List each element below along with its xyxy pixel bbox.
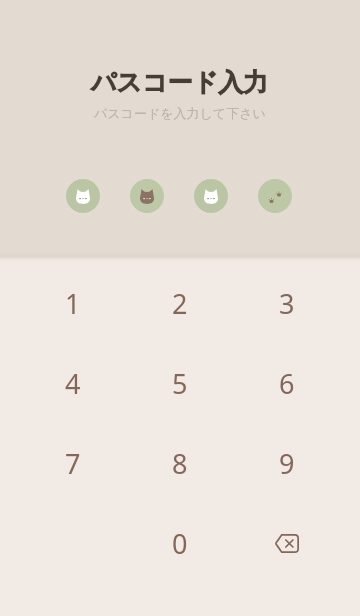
staticText: 9 xyxy=(279,445,295,482)
other: Backspace xyxy=(267,523,307,563)
staticText: 0 xyxy=(172,525,188,562)
button[interactable]: 8 xyxy=(126,423,233,503)
staticText: 6 xyxy=(279,365,295,402)
button[interactable]: 2 xyxy=(126,263,233,343)
button[interactable]: 5 xyxy=(126,343,233,423)
staticText: パスコード入力 xyxy=(91,67,269,98)
staticText: 3 xyxy=(279,285,295,322)
staticText: 5 xyxy=(172,365,188,402)
button[interactable]: 1 xyxy=(20,263,126,343)
button[interactable] xyxy=(66,179,100,213)
button[interactable] xyxy=(130,179,164,213)
button[interactable]: 4 xyxy=(20,343,126,423)
staticText: 7 xyxy=(65,445,81,482)
staticText: 2 xyxy=(172,285,188,322)
button[interactable]: 6 xyxy=(233,343,340,423)
button[interactable]: 9 xyxy=(233,423,340,503)
staticText: 4 xyxy=(65,365,81,402)
staticText: パスコードを入力して下さい xyxy=(94,105,266,121)
button[interactable]: Backspace xyxy=(233,503,340,583)
button[interactable]: 3 xyxy=(233,263,340,343)
button[interactable]: 7 xyxy=(20,423,126,503)
button[interactable]: 0 xyxy=(126,503,233,583)
button[interactable] xyxy=(258,179,292,213)
staticText: 1 xyxy=(65,285,81,322)
staticText: 8 xyxy=(172,445,188,482)
button[interactable] xyxy=(194,179,228,213)
